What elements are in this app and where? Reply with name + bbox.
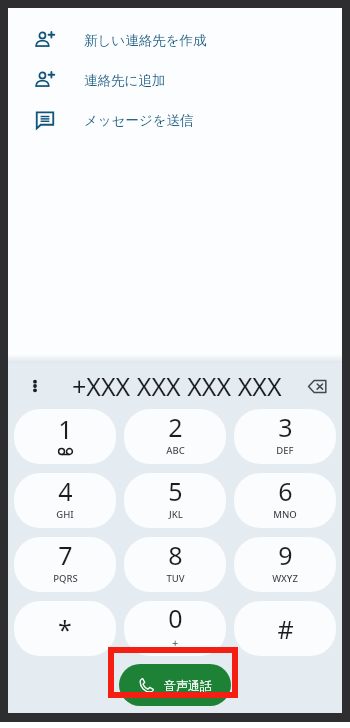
staticText: 新しい連絡先を作成 [84, 32, 207, 49]
staticText: 2 [168, 410, 183, 444]
staticText: TUV [166, 572, 185, 585]
staticText: DEF [276, 444, 294, 457]
staticText: 4 [58, 474, 73, 508]
staticText: JKL [169, 508, 183, 521]
button[interactable]: * [14, 601, 116, 656]
button[interactable]: 連絡先に追加 [8, 60, 342, 100]
button[interactable]: 音声通話 [119, 664, 231, 706]
button[interactable]: 0 [124, 601, 226, 656]
staticText: WXYZ [272, 572, 298, 585]
staticText: GHI [56, 508, 74, 521]
staticText: 音声通話 [164, 678, 212, 693]
staticText: * [58, 612, 72, 646]
staticText: メッセージを送信 [84, 112, 194, 129]
button[interactable]: 7 [14, 537, 116, 592]
staticText: 7 [58, 538, 73, 572]
staticText: + [172, 635, 179, 650]
button[interactable]: メッセージを送信 [8, 100, 342, 140]
button[interactable]: 1 [14, 409, 116, 464]
staticText: # [277, 612, 294, 646]
staticText: 8 [168, 538, 183, 572]
button[interactable]: 新しい連絡先を作成 [8, 20, 342, 60]
staticText: 0 [168, 601, 183, 635]
button[interactable]: More options [22, 373, 48, 399]
button[interactable]: 6 [234, 473, 336, 528]
button[interactable]: 9 [234, 537, 336, 592]
button[interactable]: 5 [124, 473, 226, 528]
button[interactable]: 8 [124, 537, 226, 592]
staticText: 9 [278, 538, 293, 572]
staticText: 1 [58, 412, 73, 446]
staticText: 3 [278, 410, 293, 444]
staticText: 連絡先に追加 [84, 72, 166, 89]
button[interactable]: 4 [14, 473, 116, 528]
staticText: +XXX XXX XXX XXX [72, 369, 282, 403]
button[interactable]: 2 [124, 409, 226, 464]
staticText: PQRS [53, 572, 78, 585]
staticText: ABC [166, 444, 185, 457]
button[interactable]: # [234, 601, 336, 656]
staticText: 6 [278, 474, 293, 508]
button[interactable]: 3 [234, 409, 336, 464]
staticText: 5 [168, 474, 183, 508]
button[interactable]: Backspace [302, 371, 332, 401]
staticText: MNO [273, 508, 297, 521]
